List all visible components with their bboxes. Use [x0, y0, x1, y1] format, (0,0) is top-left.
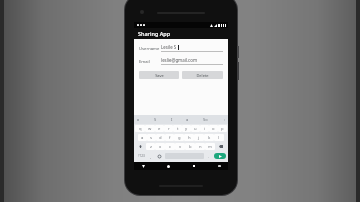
staticText: S	[154, 117, 157, 122]
staticText: j	[198, 135, 200, 141]
button[interactable]: v	[175, 143, 185, 150]
staticText: b	[189, 144, 192, 150]
staticText: So	[203, 117, 208, 122]
button[interactable]: Voice input	[136, 118, 140, 122]
button[interactable]: j	[194, 134, 204, 141]
button[interactable]: o	[209, 125, 218, 132]
button[interactable]: Backspace	[215, 143, 227, 150]
staticText: a	[186, 117, 189, 122]
staticText: Username	[139, 46, 161, 52]
button[interactable]: r	[164, 125, 173, 132]
staticText: g	[178, 135, 181, 141]
staticText: Email	[139, 59, 161, 65]
staticText: t	[177, 126, 179, 132]
button[interactable]: l	[214, 134, 224, 141]
staticText: v	[179, 144, 182, 150]
button[interactable]: m	[205, 143, 215, 150]
button[interactable]: Recents	[192, 164, 196, 168]
staticText: d	[159, 135, 162, 141]
button[interactable]: t	[173, 125, 182, 132]
staticText: z	[150, 144, 152, 150]
button[interactable]: q	[135, 125, 145, 132]
staticText: x	[159, 144, 162, 150]
staticText: o	[212, 126, 215, 132]
staticText: Sharing App	[138, 30, 171, 37]
staticText: r	[168, 126, 170, 132]
button[interactable]: So	[203, 117, 208, 122]
staticText: k	[208, 135, 211, 141]
staticText: w	[148, 126, 152, 132]
button[interactable]: S	[154, 117, 157, 122]
staticText: Delete	[196, 73, 209, 78]
button[interactable]: y	[182, 125, 191, 132]
button[interactable]: Send	[214, 153, 226, 159]
staticText: y	[185, 126, 188, 132]
button[interactable]: a	[138, 134, 147, 141]
button[interactable]: g	[174, 134, 184, 141]
staticText: h	[188, 135, 191, 141]
staticText: I	[171, 117, 173, 122]
button[interactable]: Home	[166, 164, 170, 168]
button[interactable]: ?123	[135, 152, 147, 160]
staticText: e	[158, 126, 161, 132]
button[interactable]: x	[155, 143, 165, 150]
staticText: ?123	[138, 154, 145, 158]
button[interactable]: Lesile S	[161, 44, 223, 52]
staticText: f	[169, 135, 171, 141]
button[interactable]: a	[186, 117, 189, 122]
button[interactable]: p	[218, 125, 227, 132]
button[interactable]: Back	[141, 164, 145, 168]
button[interactable]: i	[200, 125, 209, 132]
button[interactable]: d	[156, 134, 165, 141]
button[interactable]: e	[155, 125, 164, 132]
button[interactable]: Save	[139, 71, 179, 79]
button[interactable]: z	[146, 143, 155, 150]
button[interactable]: u	[191, 125, 200, 132]
staticText: u	[194, 126, 197, 132]
staticText: ,	[150, 154, 152, 159]
staticText: leslie@gmail.com	[161, 57, 197, 63]
button[interactable]: Sharing App	[134, 28, 228, 39]
staticText: i	[204, 126, 206, 132]
staticText: ⋮	[222, 118, 226, 122]
button[interactable]: k	[204, 134, 214, 141]
button[interactable]: h	[184, 134, 194, 141]
button[interactable]: f	[165, 134, 174, 141]
button[interactable]: Keyboard	[217, 164, 221, 168]
staticText: p	[221, 126, 224, 132]
staticText: a	[141, 135, 144, 141]
staticText: l	[218, 135, 220, 141]
staticText: c	[169, 144, 172, 150]
button[interactable]: w	[145, 125, 155, 132]
button[interactable]: b	[185, 143, 195, 150]
button[interactable]: leslie@gmail.com	[161, 57, 223, 65]
staticText: n	[199, 144, 202, 150]
staticText: q	[139, 126, 142, 132]
staticText: .	[208, 154, 210, 159]
button[interactable]: c	[165, 143, 175, 150]
staticText: s	[150, 135, 153, 141]
staticText: m	[208, 144, 212, 150]
button[interactable]: Comma	[147, 152, 154, 160]
button[interactable]: Emoji	[154, 152, 164, 160]
button[interactable]: Delete	[182, 71, 223, 79]
staticText: Save	[155, 73, 164, 78]
button[interactable]: s	[147, 134, 156, 141]
button[interactable]: More suggestions	[222, 118, 226, 122]
button[interactable]: n	[195, 143, 205, 150]
staticText: Lesile S	[161, 44, 177, 50]
button[interactable]: I	[171, 117, 173, 122]
button[interactable]: Shift	[135, 143, 146, 150]
